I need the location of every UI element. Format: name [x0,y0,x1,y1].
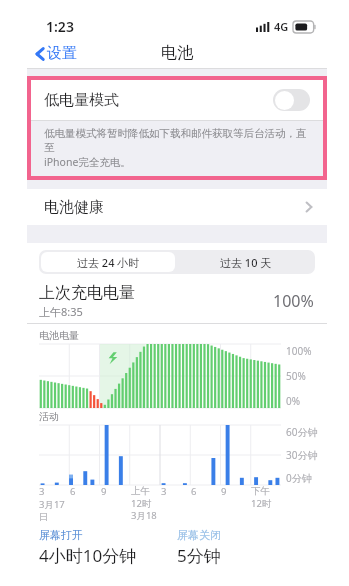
staticText: 上次充电电量 [39,283,135,303]
staticText: 6 [191,485,221,498]
staticText: 0分钟 [286,471,312,485]
staticText: 活动 [39,410,59,423]
staticText: 0% [286,394,301,408]
button[interactable]: 过去 10 天 [177,250,315,274]
button[interactable]: 电池健康 [27,189,327,225]
staticText: 过去 10 天 [220,255,272,270]
staticText: 50% [286,369,306,383]
staticText: 9 [101,485,131,498]
staticText: 4小时10分钟 [39,544,137,567]
staticText: 60分钟 [286,425,318,439]
staticText: 3 [39,485,70,498]
staticText: 30分钟 [286,448,318,462]
staticText: 过去 24 小时 [77,255,140,270]
button[interactable]: 设置 [27,41,85,66]
staticText: 5分钟 [177,544,221,567]
staticText: 12时 3月18日 [131,497,161,523]
staticText: 屏幕打开 [39,528,83,542]
staticText: 1:23 [46,17,74,36]
staticText: 3月17日 [39,498,70,523]
button[interactable]: 过去 24 小时 [41,252,175,272]
staticText: 12时 [251,497,281,510]
staticText: 9 [221,485,251,498]
staticText: 低电量模式 [44,91,119,110]
staticText: 低电量模式将暂时降低如下载和邮件获取等后台活动，直至 iPhone完全充电。 [44,127,311,169]
button[interactable]: 低电量模式 [31,80,323,120]
staticText: 100% [273,290,314,312]
staticText: 3 [161,485,191,498]
staticText: 屏幕关闭 [177,528,221,542]
staticText: 电池电量 [39,329,79,342]
staticText: 电池 [161,43,193,63]
button[interactable]: 低电量模式开关 [273,89,310,111]
staticText: 设置 [47,44,77,63]
staticText: 上午8:35 [39,304,83,319]
staticText: 100% [286,344,312,358]
staticText: 4G [274,19,289,34]
staticText: 6 [70,485,101,498]
staticText: 上午 [131,485,161,497]
staticText: 下午 [251,485,281,497]
staticText: 电池健康 [44,198,104,217]
